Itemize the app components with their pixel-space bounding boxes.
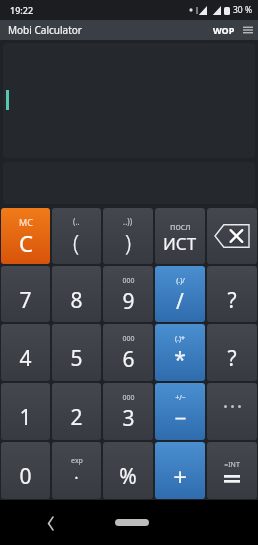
button[interactable]: (..	[52, 208, 101, 264]
staticText: (..	[73, 216, 80, 227]
staticText: ?	[227, 286, 237, 315]
staticText: *	[174, 345, 186, 374]
staticText: MC	[19, 216, 33, 228]
button[interactable]: Back	[38, 510, 64, 536]
staticText: ·	[74, 467, 79, 489]
staticText: Mobi Calculator	[8, 23, 82, 37]
button[interactable]: +/−	[155, 383, 205, 440]
button[interactable]: 8	[52, 266, 101, 322]
staticText: C	[19, 228, 33, 258]
staticText: 6	[122, 345, 135, 374]
button[interactable]: 1	[1, 383, 50, 440]
staticText: ИСТ	[163, 232, 197, 255]
button[interactable]: 7	[1, 266, 50, 322]
staticText: −	[174, 404, 187, 433]
staticText: %	[119, 462, 137, 491]
staticText: 5	[70, 344, 83, 373]
staticText: )	[125, 227, 132, 257]
button[interactable]: ?	[207, 266, 257, 322]
staticText: 1	[19, 403, 32, 432]
button[interactable]: (.)*	[155, 324, 205, 381]
button[interactable]: 0	[1, 442, 50, 499]
staticText: 9	[122, 287, 135, 316]
button[interactable]: =INT	[207, 442, 257, 499]
button[interactable]: %	[103, 442, 153, 499]
button[interactable]: 4	[1, 324, 50, 381]
staticText: ..))	[123, 216, 133, 227]
button[interactable]: ..))	[103, 208, 153, 264]
button[interactable]: Menu	[238, 23, 258, 37]
staticText: +	[173, 460, 187, 493]
staticText: 4	[19, 344, 32, 373]
button[interactable]: 000	[103, 383, 153, 440]
staticText: /	[176, 287, 184, 316]
staticText: (.)/	[176, 276, 185, 286]
staticText: 19:22	[10, 4, 34, 16]
staticText: 3	[122, 404, 135, 433]
staticText: exp	[71, 456, 83, 466]
staticText: 30 %	[233, 4, 252, 16]
button[interactable]: 000	[103, 324, 153, 381]
button[interactable]: More	[207, 383, 257, 440]
button[interactable]: (.)/	[155, 266, 205, 322]
staticText: 0	[19, 462, 32, 491]
staticText: 2	[70, 403, 83, 432]
button[interactable]: WOP	[210, 22, 238, 38]
staticText: 8	[70, 286, 83, 315]
staticText: 000	[122, 334, 135, 344]
button[interactable]: 5	[52, 324, 101, 381]
staticText: (	[73, 227, 80, 257]
button[interactable]: +	[155, 442, 205, 499]
button[interactable]: посл	[155, 208, 205, 264]
button[interactable]: ?	[207, 324, 257, 381]
staticText: 000	[122, 276, 135, 286]
staticText: посл	[170, 220, 191, 232]
button[interactable]: 2	[52, 383, 101, 440]
staticText: =INT	[224, 460, 240, 470]
staticText: 7	[19, 286, 32, 315]
staticText: ?	[227, 344, 237, 373]
staticText: 000	[122, 393, 135, 403]
button[interactable]: exp	[52, 442, 101, 499]
button[interactable]: MC	[1, 208, 50, 264]
staticText: +/−	[175, 393, 186, 403]
staticText: WOP	[213, 24, 235, 36]
button[interactable]: Home	[115, 519, 149, 526]
button[interactable]	[3, 43, 255, 158]
staticText: (.)*	[175, 334, 185, 344]
button[interactable]: Backspace	[207, 208, 257, 264]
button[interactable]: 000	[103, 266, 153, 322]
